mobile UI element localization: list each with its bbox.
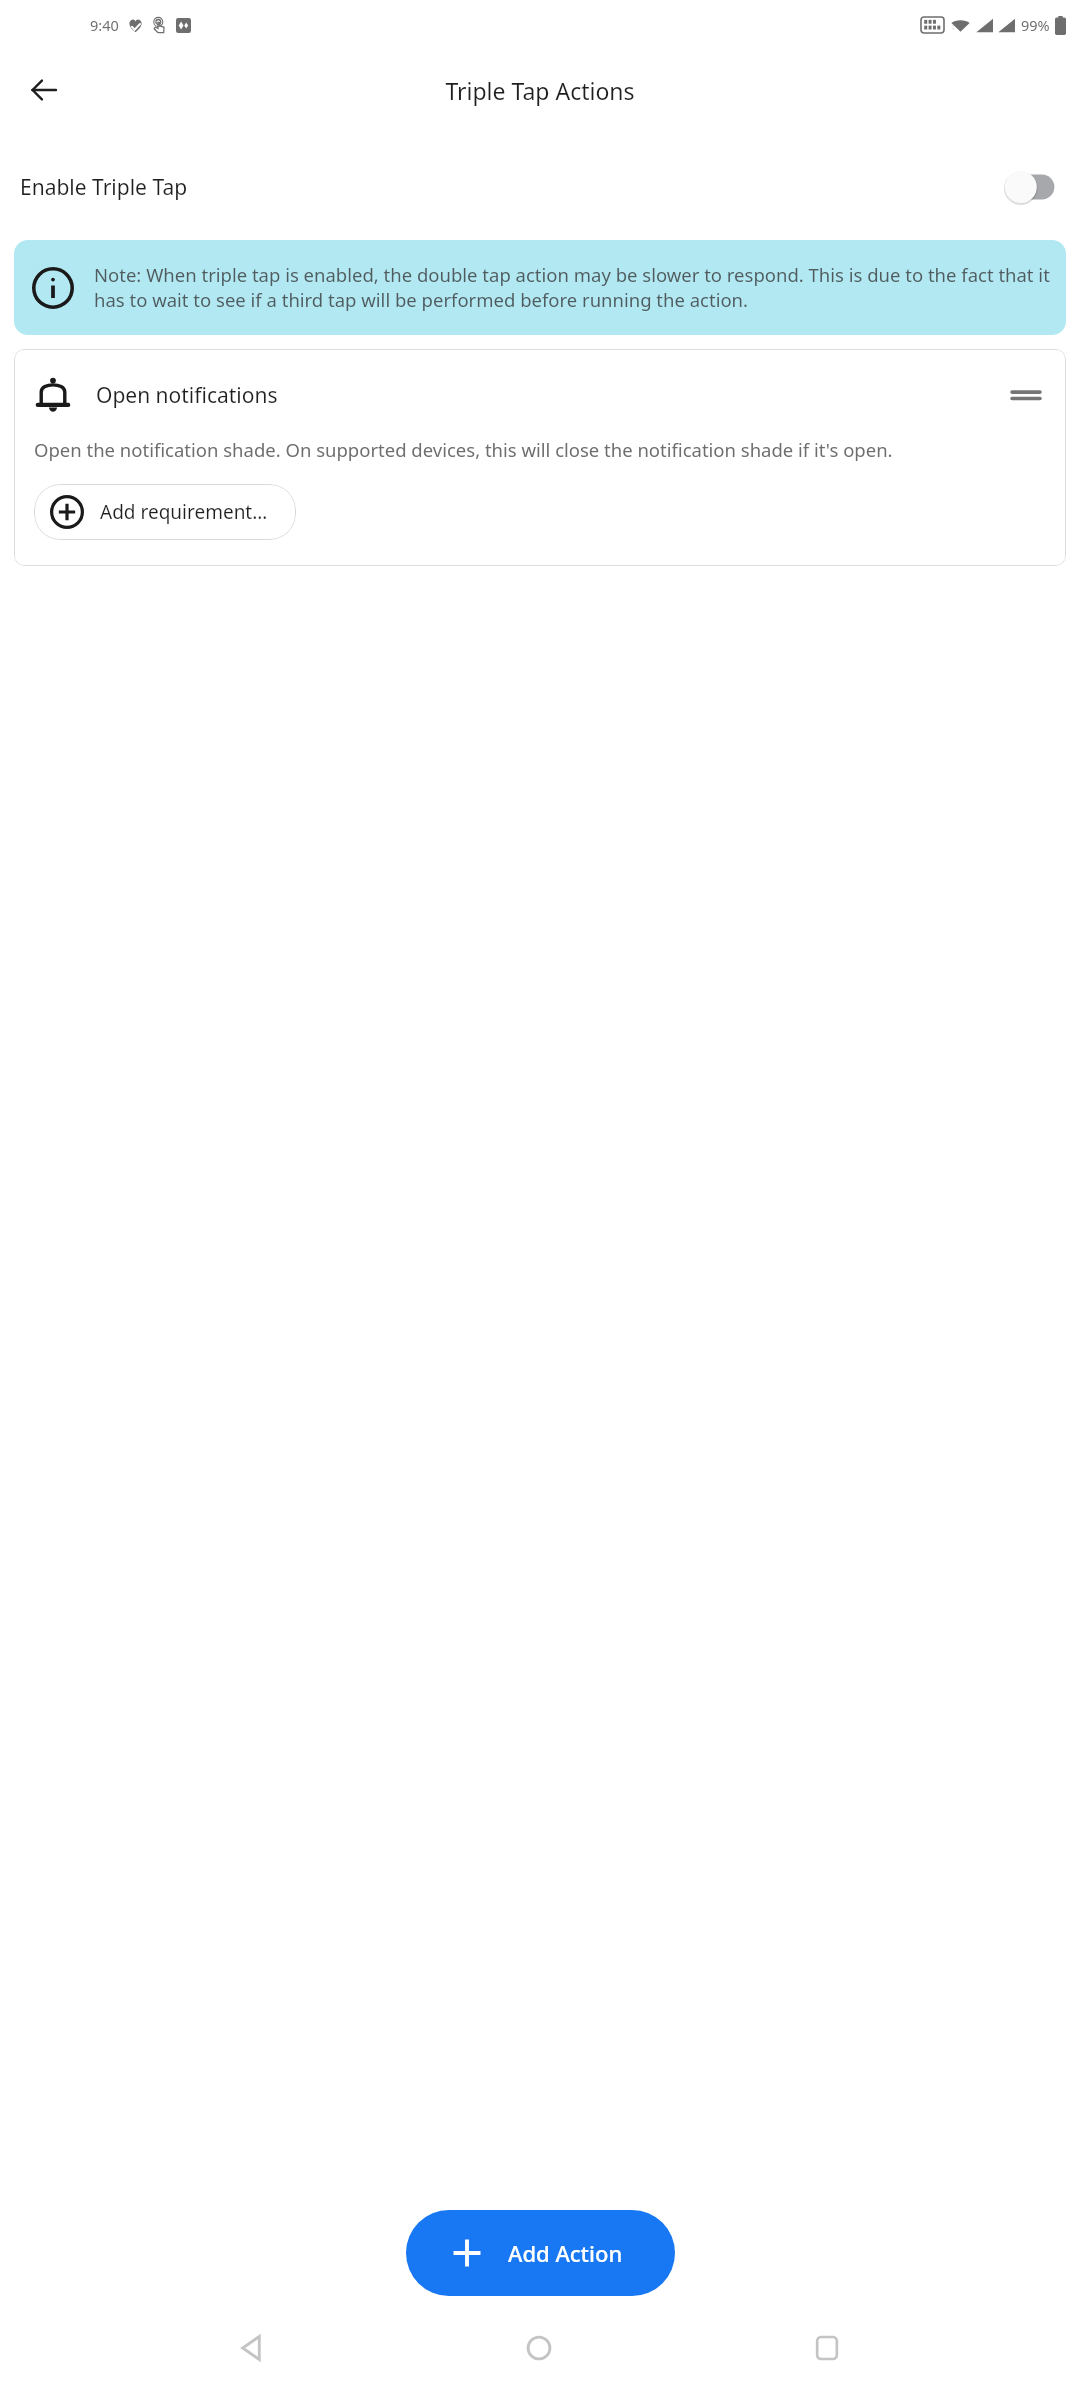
staticText: Note: When triple tap is enabled, the do… (94, 262, 1050, 313)
staticText: Triple Tap Actions (445, 75, 635, 106)
staticText: Open notifications (96, 381, 278, 410)
button[interactable]: Add requirement… (34, 484, 296, 540)
staticText: Add requirement… (100, 499, 268, 525)
staticText: 99% (1021, 15, 1050, 35)
button[interactable]: Back (18, 64, 70, 116)
staticText: Add Action (508, 2238, 623, 2268)
button[interactable]: Enable Triple Tap (0, 156, 1080, 218)
staticText: Enable Triple Tap (20, 173, 188, 202)
button[interactable]: Home (504, 2313, 574, 2383)
button[interactable]: Open notifications (14, 349, 1066, 566)
button[interactable]: Reorder (1006, 375, 1046, 415)
staticText: 9:40 (90, 15, 119, 35)
other: Enable Triple Tap toggle (1004, 167, 1060, 207)
staticText: Open the notification shade. On supporte… (34, 437, 893, 462)
button[interactable]: Recents (792, 2313, 862, 2383)
button[interactable]: Back (217, 2313, 287, 2383)
button[interactable]: Add Action (406, 2210, 675, 2296)
